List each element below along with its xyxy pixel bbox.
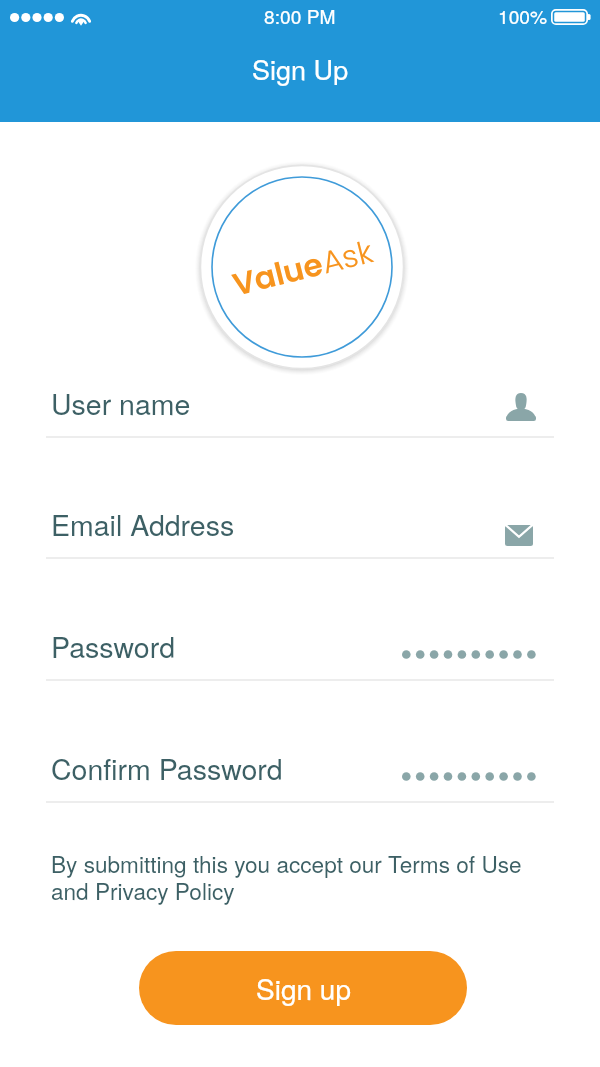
button[interactable]: Sign up (139, 951, 467, 1025)
staticText: Email Address (51, 503, 235, 544)
other: Hidden password (402, 772, 536, 781)
button[interactable]: By submitting this you accept our Terms … (51, 847, 533, 906)
staticText: 100% (498, 2, 548, 29)
button[interactable]: User name (0, 376, 600, 438)
staticText: Ask (317, 229, 377, 283)
staticText: Password (51, 625, 175, 666)
staticText: User name (51, 382, 191, 423)
staticText: Confirm Password (51, 747, 283, 788)
other: Wi-Fi (70, 8, 92, 25)
button[interactable]: Password (0, 619, 600, 681)
button[interactable]: Email Address (0, 497, 600, 559)
other: Signal strength (10, 12, 65, 23)
button[interactable]: Confirm Password (0, 741, 600, 803)
staticText: Sign up (256, 968, 351, 1008)
other: Email address (505, 525, 533, 546)
other: User name (506, 393, 536, 421)
button[interactable]: ValueAsk logo (198, 163, 406, 371)
other: Hidden password (402, 650, 536, 659)
staticText: Sign Up (252, 49, 349, 88)
staticText: Value (228, 242, 328, 306)
staticText: 8:00 PM (264, 2, 336, 29)
other: Battery full (551, 9, 591, 25)
